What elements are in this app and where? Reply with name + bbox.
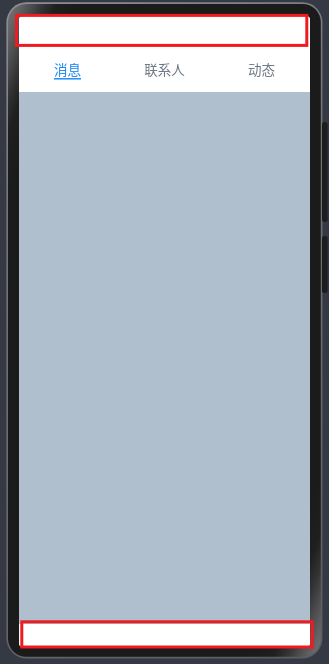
staticText: 消息 bbox=[54, 59, 81, 79]
button[interactable]: 联系人 bbox=[116, 48, 213, 92]
staticText: 动态 bbox=[248, 59, 275, 79]
staticText: 联系人 bbox=[144, 59, 185, 79]
button[interactable]: 动态 bbox=[213, 48, 310, 92]
button[interactable]: 消息 bbox=[19, 48, 116, 92]
